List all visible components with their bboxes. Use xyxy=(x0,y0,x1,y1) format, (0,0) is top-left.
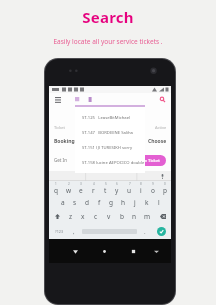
button[interactable]: Sort xyxy=(86,95,94,103)
staticText: Choose xyxy=(148,138,167,145)
staticText: t xyxy=(104,186,107,195)
staticText: k xyxy=(145,198,149,207)
button[interactable]: h xyxy=(117,195,129,209)
button[interactable]: . xyxy=(139,224,151,239)
staticText: 3 xyxy=(80,182,82,186)
button[interactable]: x xyxy=(77,209,89,224)
staticText: Active xyxy=(155,125,167,130)
button[interactable]: Backspace xyxy=(154,209,171,224)
staticText: New Ticket xyxy=(138,158,160,164)
staticText: e xyxy=(79,186,83,195)
button[interactable]: v xyxy=(102,209,115,224)
button[interactable]: 9 xyxy=(147,181,159,195)
button[interactable]: 5 xyxy=(99,181,111,195)
staticText: l xyxy=(158,198,160,207)
button[interactable]: d xyxy=(81,195,93,209)
button[interactable]: m xyxy=(141,209,154,224)
button[interactable]: z xyxy=(65,209,77,224)
staticText: q xyxy=(54,186,58,195)
staticText: j xyxy=(134,198,136,207)
button[interactable]: Hide keyboard xyxy=(151,246,162,257)
staticText: ST-125 LeaseBitMichael xyxy=(82,115,131,121)
button[interactable]: c xyxy=(89,209,102,224)
staticText: w xyxy=(66,186,72,195)
button[interactable]: k xyxy=(141,195,153,209)
staticText: v xyxy=(107,212,111,221)
button[interactable]: 7 xyxy=(123,181,135,195)
staticText: Search xyxy=(82,7,134,27)
button[interactable]: Home xyxy=(99,246,110,257)
button[interactable]: g xyxy=(105,195,117,209)
staticText: 7 xyxy=(129,182,131,186)
button[interactable]: , xyxy=(69,224,79,239)
button[interactable]: Open navigation menu xyxy=(53,95,62,104)
staticText: 9 xyxy=(152,182,154,186)
staticText: Easily locate all your service tickets . xyxy=(53,37,163,46)
button[interactable]: 2 xyxy=(62,181,75,195)
staticText: 4 xyxy=(93,182,95,186)
button[interactable]: 0 xyxy=(159,181,171,195)
staticText: , xyxy=(73,228,75,236)
staticText: r xyxy=(92,186,95,195)
button[interactable]: Recent apps xyxy=(128,246,139,257)
button[interactable]: Filter xyxy=(73,95,81,103)
button[interactable]: a xyxy=(56,195,69,209)
staticText: s xyxy=(73,198,77,207)
button[interactable]: l xyxy=(153,195,165,209)
button[interactable]: Search xyxy=(158,95,167,104)
button[interactable]: f xyxy=(93,195,105,209)
button[interactable]: Done xyxy=(151,224,171,239)
staticText: z xyxy=(69,212,73,221)
staticText: 1 xyxy=(55,182,57,186)
staticText: c xyxy=(94,212,98,221)
staticText: u xyxy=(127,186,132,195)
button[interactable]: 8 xyxy=(135,181,147,195)
button[interactable]: Back xyxy=(70,246,81,257)
button[interactable]: New Ticket xyxy=(132,155,166,166)
staticText: ?123 xyxy=(55,229,64,234)
button[interactable]: Space xyxy=(79,224,139,239)
staticText: ST-151 (J) TURESIKH sorry xyxy=(82,145,133,151)
button[interactable]: ?123 xyxy=(49,224,69,239)
staticText: h xyxy=(121,198,126,207)
button[interactable]: b xyxy=(115,209,128,224)
staticText: m xyxy=(144,212,151,221)
staticText: . xyxy=(144,228,146,236)
staticText: o xyxy=(151,186,155,195)
staticText: Ticket xyxy=(54,125,66,130)
staticText: d xyxy=(85,198,89,207)
staticText: i xyxy=(140,186,142,195)
button[interactable]: ST-151 (J) TURESIKH sorry xyxy=(75,140,145,155)
staticText: p xyxy=(163,186,167,195)
staticText: y xyxy=(115,186,119,195)
staticText: 8 xyxy=(140,182,142,186)
button[interactable]: 3 xyxy=(75,181,87,195)
staticText: a xyxy=(61,198,65,207)
staticText: 6 xyxy=(116,182,118,186)
button[interactable]: 4 xyxy=(87,181,99,195)
staticText: 0 xyxy=(164,182,166,186)
staticText: f xyxy=(98,198,101,207)
button[interactable]: j xyxy=(129,195,141,209)
button[interactable]: 6 xyxy=(111,181,123,195)
button[interactable]: Shift xyxy=(49,209,65,224)
button[interactable]: ST-147 BORDEENE Saliha xyxy=(75,125,145,140)
staticText: 2 xyxy=(68,182,70,186)
staticText: Booking xyxy=(54,138,75,145)
staticText: n xyxy=(132,212,137,221)
button[interactable]: 1 xyxy=(49,181,62,195)
staticText: g xyxy=(109,198,113,207)
staticText: 5 xyxy=(105,182,107,186)
button[interactable]: s xyxy=(69,195,81,209)
button[interactable]: n xyxy=(128,209,141,224)
staticText: b xyxy=(120,212,124,221)
button[interactable]: ST-158 lucine AEPOCICO double xyxy=(75,155,145,170)
button[interactable]: ST-125 LeaseBitMichael xyxy=(75,110,145,125)
staticText: ST-147 BORDEENE Saliha xyxy=(82,130,133,136)
staticText: Get In xyxy=(54,157,67,163)
staticText: ST-158 lucine AEPOCICO double xyxy=(82,160,145,166)
staticText: x xyxy=(81,212,85,221)
